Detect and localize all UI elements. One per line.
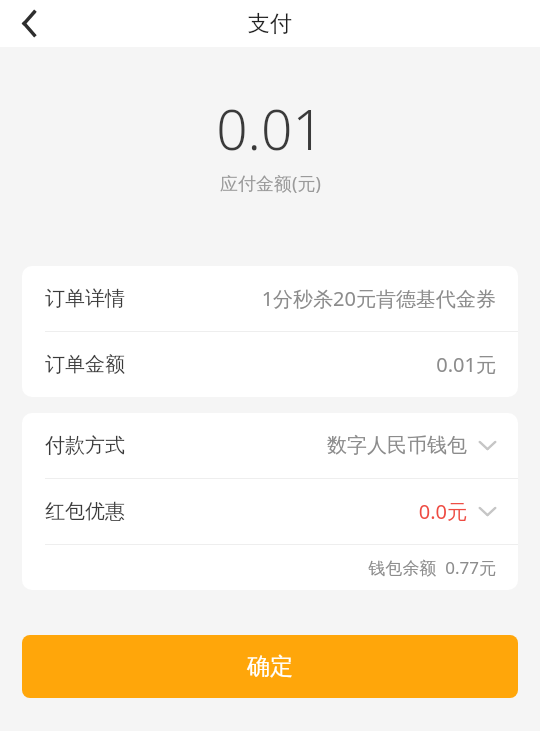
staticText: 钱包余额 0.77元 (368, 556, 496, 579)
staticText: 0.0元 (418, 498, 467, 525)
button[interactable]: 付款方式 (22, 413, 518, 478)
button[interactable]: Back (0, 0, 58, 47)
staticText: 应付金额(元) (220, 171, 321, 196)
staticText: 确定 (247, 652, 293, 681)
staticText: 支付 (248, 10, 292, 38)
staticText: 0.01元 (436, 351, 496, 378)
staticText: 1分秒杀20元肯德基代金券 (261, 285, 496, 312)
button[interactable]: 确定 (22, 635, 518, 698)
staticText: 付款方式 (45, 433, 125, 458)
staticText: 订单详情 (45, 286, 125, 311)
button[interactable]: 红包优惠 (22, 479, 518, 544)
staticText: 订单金额 (45, 352, 125, 377)
staticText: 红包优惠 (45, 499, 125, 524)
staticText: 0.01 (216, 91, 324, 166)
staticText: 数字人民币钱包 (327, 433, 467, 458)
